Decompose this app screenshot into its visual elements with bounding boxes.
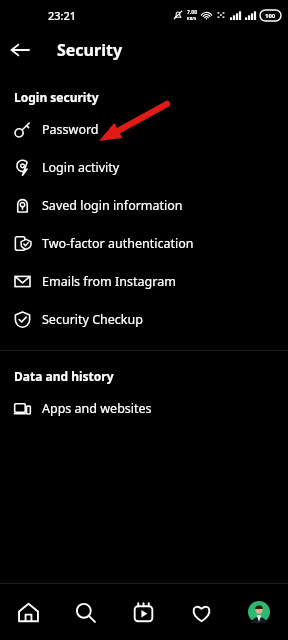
button[interactable]: Back [0, 30, 40, 70]
staticText: Login activity [42, 159, 120, 176]
staticText: Saved login information [42, 197, 183, 214]
button[interactable]: Search [57, 584, 114, 640]
button[interactable]: Reels [114, 584, 172, 640]
button[interactable]: Profile [230, 584, 288, 640]
staticText: Login security [14, 89, 99, 105]
staticText: Security Checkup [42, 311, 143, 328]
button[interactable]: Login activity [0, 148, 288, 186]
staticText: KB/S [187, 16, 197, 21]
staticText: Two-factor authentication [42, 235, 194, 252]
button[interactable]: Home [0, 584, 57, 640]
staticText: Apps and websites [42, 400, 152, 417]
staticText: Data and history [14, 368, 114, 384]
staticText: Password [42, 121, 99, 138]
staticText: 100 [265, 12, 276, 20]
button[interactable]: Likes [172, 584, 230, 640]
button[interactable]: Saved login information [0, 186, 288, 224]
staticText: Emails from Instagram [42, 273, 176, 290]
button[interactable]: Apps and websites [0, 389, 288, 427]
staticText: 23:21 [48, 8, 77, 23]
button[interactable]: Two-factor authentication [0, 224, 288, 262]
button[interactable]: Password [0, 110, 288, 148]
button[interactable]: Security Checkup [0, 300, 288, 338]
button[interactable]: Emails from Instagram [0, 262, 288, 300]
staticText: Security [57, 39, 123, 61]
staticText: 7.00 [187, 9, 197, 16]
